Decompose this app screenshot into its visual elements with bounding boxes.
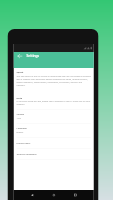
button[interactable]: Recent apps: [72, 191, 79, 198]
staticText: Privacy Policy: [16, 141, 30, 144]
staticText: 1.0.0: [16, 117, 21, 120]
staticText: Terms & Conditions: [16, 152, 37, 155]
button[interactable]: Back: [28, 191, 35, 198]
button[interactable]: Back: [16, 52, 24, 60]
button[interactable]: Terms & Conditions: [16, 148, 91, 159]
staticText: This app stores all the WI-FI/SSID in me…: [16, 74, 91, 87]
button[interactable]: Privacy Policy: [16, 137, 91, 148]
staticText: Note: [16, 96, 22, 99]
button[interactable]: Language: [16, 123, 91, 137]
staticText: If you enjoy using our app, please take …: [16, 100, 91, 106]
staticText: English: [16, 131, 23, 134]
staticText: Language: [16, 127, 27, 130]
staticText: Settings: [26, 54, 39, 58]
staticText: Version: [16, 113, 24, 116]
button[interactable]: Home: [50, 191, 57, 198]
button[interactable]: Version: [16, 110, 91, 123]
staticText: About: [16, 70, 23, 73]
